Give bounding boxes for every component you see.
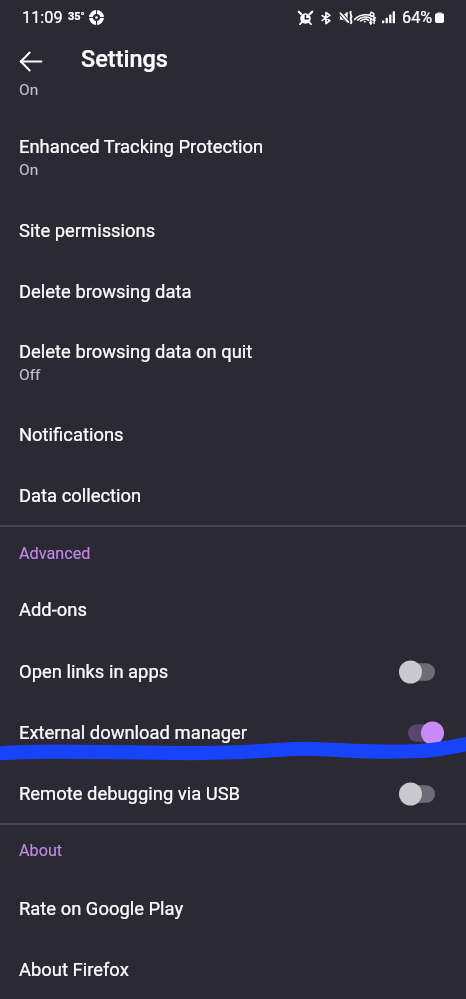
staticText: Remote debugging via USB bbox=[19, 783, 399, 805]
button[interactable]: Remote debugging via USB bbox=[0, 763, 466, 824]
staticText: Data collection bbox=[19, 485, 142, 507]
staticText: About Firefox bbox=[19, 959, 129, 981]
button[interactable]: Back bbox=[9, 39, 53, 83]
staticText: 35° bbox=[68, 10, 85, 23]
staticText: 11:09 bbox=[22, 8, 63, 27]
staticText: On bbox=[19, 161, 39, 179]
staticText: Site permissions bbox=[19, 220, 156, 242]
button[interactable]: Open links in apps bbox=[0, 641, 466, 702]
staticText: Enhanced Tracking Protection bbox=[19, 136, 264, 158]
staticText: Rate on Google Play bbox=[19, 898, 184, 920]
staticText: Open links in apps bbox=[19, 661, 399, 683]
button[interactable]: Notifications bbox=[0, 404, 466, 465]
staticText: Advanced bbox=[19, 544, 91, 563]
staticText: Add-ons bbox=[19, 599, 87, 621]
button[interactable]: Site permissions bbox=[0, 200, 466, 261]
staticText: About bbox=[19, 841, 63, 860]
button[interactable]: Delete browsing data bbox=[0, 261, 466, 322]
button[interactable]: Data collection bbox=[0, 465, 466, 526]
button[interactable]: Enhanced Tracking Protection bbox=[0, 114, 466, 197]
button[interactable]: Add-ons bbox=[0, 579, 466, 640]
button[interactable]: External download manager bbox=[0, 702, 466, 763]
staticText: 64% bbox=[402, 8, 433, 27]
staticText: On bbox=[19, 81, 39, 111]
staticText: External download manager bbox=[19, 722, 399, 744]
staticText: Delete browsing data bbox=[19, 281, 192, 303]
button[interactable]: Delete browsing data on quit bbox=[0, 319, 466, 402]
staticText: Notifications bbox=[19, 424, 124, 446]
button[interactable]: About Firefox bbox=[0, 939, 466, 999]
staticText: Settings bbox=[81, 45, 169, 73]
button[interactable]: Rate on Google Play bbox=[0, 878, 466, 939]
staticText: Off bbox=[19, 366, 41, 384]
staticText: Delete browsing data on quit bbox=[19, 341, 253, 363]
